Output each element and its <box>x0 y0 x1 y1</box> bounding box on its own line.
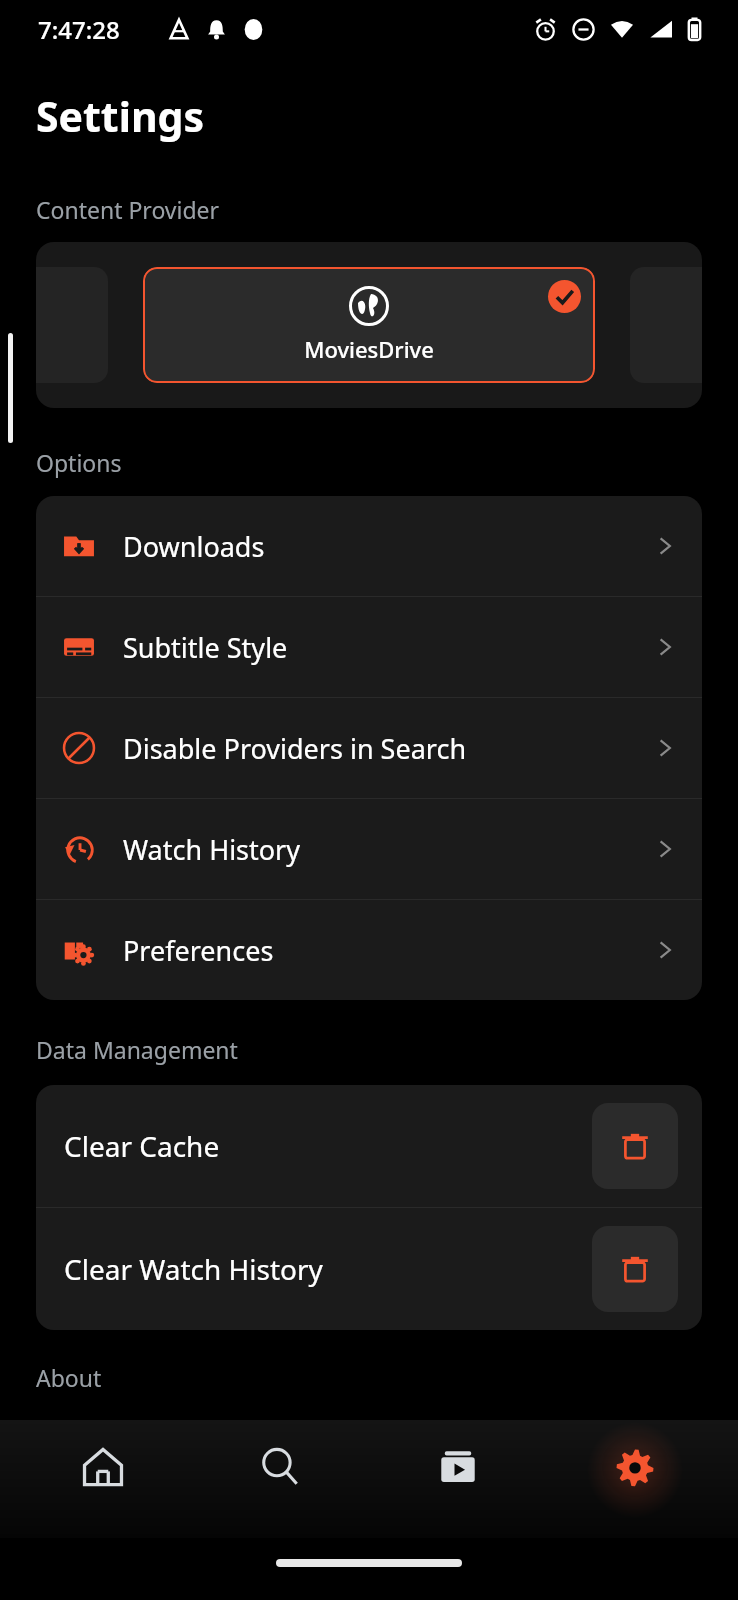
staticText: MoviesDrive <box>304 334 434 364</box>
button[interactable]: Clear Cache <box>592 1103 678 1189</box>
button[interactable]: Clear Cache <box>36 1085 702 1207</box>
staticText: Disable Providers in Search <box>123 730 467 767</box>
button[interactable]: Disable Providers in Search <box>36 698 702 798</box>
staticText: Downloads <box>123 528 265 565</box>
staticText: Preferences <box>123 932 274 969</box>
button[interactable]: Clear Watch History <box>36 1208 702 1330</box>
button[interactable]: MoviesDrive <box>143 267 595 383</box>
staticText: Content Provider <box>36 194 220 225</box>
staticText: Watch History <box>123 831 301 868</box>
staticText: 7:47:28 <box>38 13 120 46</box>
button[interactable]: Subtitle Style <box>36 597 702 697</box>
button[interactable]: Library <box>383 1442 533 1538</box>
staticText: Clear Cache <box>64 1127 220 1165</box>
button[interactable]: Search <box>205 1442 355 1538</box>
staticText: Settings <box>36 88 205 144</box>
staticText: Clear Watch History <box>64 1250 323 1288</box>
button[interactable]: Downloads <box>36 496 702 596</box>
button[interactable]: Settings <box>560 1442 710 1538</box>
staticText: Options <box>36 447 122 478</box>
button[interactable]: Watch History <box>36 799 702 899</box>
button[interactable]: Preferences <box>36 900 702 1000</box>
staticText: Data Management <box>36 1034 238 1065</box>
button[interactable]: Clear Watch History <box>592 1226 678 1312</box>
staticText: About <box>36 1362 102 1393</box>
staticText: Subtitle Style <box>123 629 288 666</box>
button[interactable]: Home <box>28 1442 178 1538</box>
